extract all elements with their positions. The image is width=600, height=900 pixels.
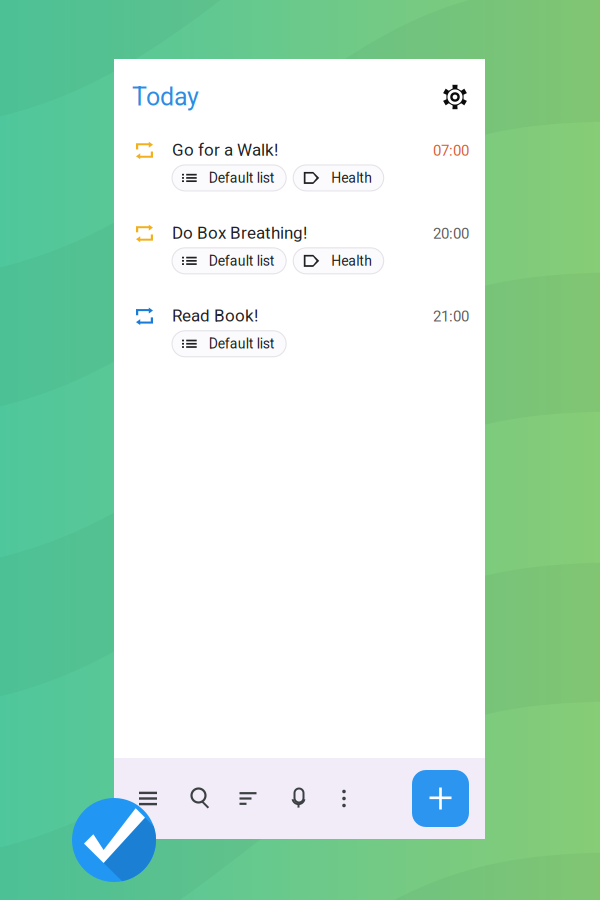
button[interactable]: Menu	[130, 779, 166, 817]
staticText: 21:00	[433, 308, 469, 325]
button[interactable]: Read Book!	[135, 306, 469, 357]
staticText: 20:00	[433, 225, 469, 242]
button[interactable]: Health	[293, 248, 384, 274]
button[interactable]: Sort	[230, 779, 266, 817]
button[interactable]: Do Box Breathing!	[135, 223, 469, 274]
staticText: 07:00	[433, 142, 469, 159]
staticText: Health	[331, 170, 372, 186]
button[interactable]: More options	[331, 779, 357, 817]
staticText: Read Book!	[172, 306, 258, 326]
button[interactable]: Voice input	[283, 779, 315, 817]
staticText: Health	[331, 253, 372, 269]
staticText: Do Box Breathing!	[172, 223, 307, 243]
button[interactable]: Search	[183, 779, 219, 817]
button[interactable]: Default list	[172, 165, 286, 191]
staticText: Today	[132, 82, 199, 112]
button[interactable]: Settings	[438, 80, 472, 114]
button[interactable]: Health	[293, 165, 384, 191]
staticText: Default list	[209, 253, 275, 269]
staticText: Default list	[209, 336, 275, 352]
staticText: Go for a Walk!	[172, 140, 278, 160]
button[interactable]: Go for a Walk!	[135, 140, 469, 191]
button[interactable]: Default list	[172, 331, 286, 357]
button[interactable]: Default list	[172, 248, 286, 274]
staticText: Default list	[209, 170, 275, 186]
button[interactable]: Add task	[412, 770, 469, 827]
